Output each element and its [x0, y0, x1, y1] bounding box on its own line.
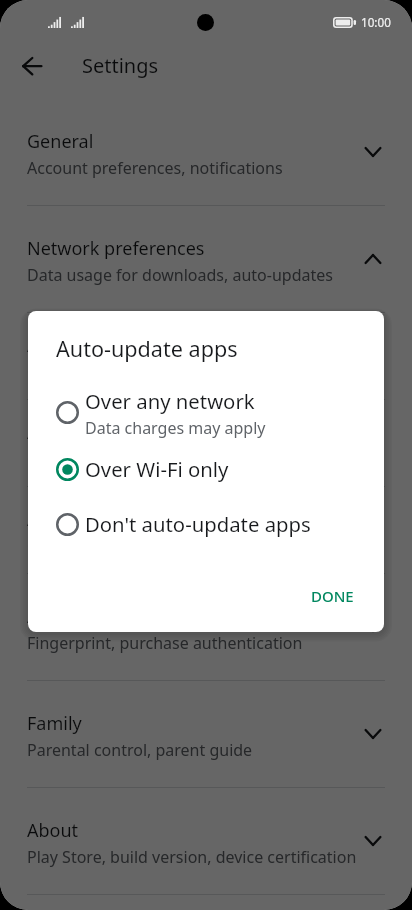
- staticText: Parental control, parent guide: [27, 739, 253, 761]
- button[interactable]: Auto-play videos: [0, 487, 412, 574]
- button[interactable]: Auto-update apps: [0, 400, 412, 487]
- button[interactable]: App download preference: [0, 313, 412, 400]
- button[interactable]: Network preferences: [0, 206, 412, 313]
- staticText: About: [27, 818, 79, 843]
- button[interactable]: Over any network: [28, 386, 384, 438]
- staticText: Over any network: [27, 361, 161, 383]
- staticText: Settings: [82, 52, 159, 79]
- staticText: Auto-update apps: [56, 334, 238, 363]
- button[interactable]: About: [0, 788, 412, 895]
- staticText: Over Wi-Fi only: [27, 535, 141, 557]
- staticText: 10:00: [361, 14, 391, 30]
- button[interactable]: DONE: [299, 578, 366, 614]
- staticText: Network preferences: [27, 236, 205, 261]
- staticText: Over any network: [85, 387, 255, 415]
- staticText: Account preferences, notifications: [27, 157, 283, 179]
- staticText: Over Wi-Fi only: [85, 455, 229, 483]
- button[interactable]: Authentication: [0, 574, 412, 681]
- staticText: Don't auto-update apps: [85, 510, 311, 538]
- staticText: Data charges may apply: [85, 417, 266, 439]
- staticText: Authentication: [27, 604, 152, 629]
- staticText: Fingerprint, purchase authentication: [27, 632, 303, 654]
- staticText: Play Store, build version, device certif…: [27, 846, 357, 868]
- button[interactable]: Don't auto-update apps: [28, 498, 384, 550]
- staticText: Auto-play videos: [27, 507, 168, 532]
- staticText: Data usage for downloads, auto-updates: [27, 264, 333, 286]
- button[interactable]: Back: [0, 44, 64, 99]
- staticText: General: [27, 129, 94, 154]
- staticText: Family: [27, 711, 82, 736]
- staticText: Auto-update apps: [27, 420, 179, 445]
- staticText: App download preference: [27, 333, 246, 358]
- button[interactable]: Over Wi-Fi only: [28, 443, 384, 495]
- button[interactable]: General: [0, 99, 412, 206]
- staticText: Over Wi-Fi only: [27, 448, 141, 470]
- button[interactable]: Family: [0, 681, 412, 788]
- staticText: DONE: [311, 586, 354, 606]
